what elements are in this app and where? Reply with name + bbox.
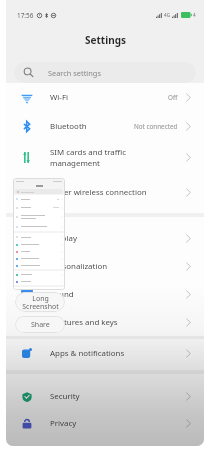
staticText: Wi-Fi	[50, 92, 168, 103]
staticText: Display	[50, 233, 183, 244]
staticText: SIM cards and traffic management	[50, 147, 183, 168]
staticText: Security	[50, 391, 183, 402]
button[interactable]: Other wireless connection	[6, 174, 204, 211]
staticText: Privacy	[50, 418, 183, 429]
staticText: Not connected	[134, 122, 178, 131]
staticText: Personalization	[50, 261, 183, 272]
button[interactable]: SIM cards and traffic management	[6, 141, 204, 174]
staticText: Off	[168, 93, 178, 102]
button[interactable]: Long Screenshot	[15, 292, 65, 312]
staticText: Other wireless connection	[50, 187, 183, 198]
staticText: Sound	[50, 289, 183, 300]
button[interactable]: Personalization	[6, 252, 204, 280]
staticText: Apps & notifications	[50, 348, 183, 359]
button[interactable]: Bluetooth	[6, 112, 204, 141]
staticText: Settings	[85, 33, 126, 47]
button[interactable]: Apps & notifications	[6, 339, 204, 367]
button[interactable]: Search settings	[14, 62, 196, 83]
staticText: 4	[193, 12, 196, 18]
staticText: 4G	[164, 12, 170, 18]
button[interactable]: Sound	[6, 280, 204, 308]
staticText: Share	[31, 320, 50, 330]
staticText: Search settings	[48, 68, 101, 78]
staticText: Long Screenshot	[22, 294, 59, 311]
staticText: Gestures and keys	[50, 317, 183, 328]
staticText: Bluetooth	[50, 121, 134, 132]
button[interactable]: Share	[15, 316, 65, 333]
button[interactable]: Wi-Fi	[6, 83, 204, 112]
button[interactable]: Screenshot preview	[13, 178, 65, 290]
button[interactable]: Gestures and keys	[6, 308, 204, 336]
button[interactable]: Security	[6, 383, 204, 410]
button[interactable]: Display	[6, 224, 204, 252]
button[interactable]: Privacy	[6, 410, 204, 437]
staticText: 17:56	[17, 11, 34, 20]
